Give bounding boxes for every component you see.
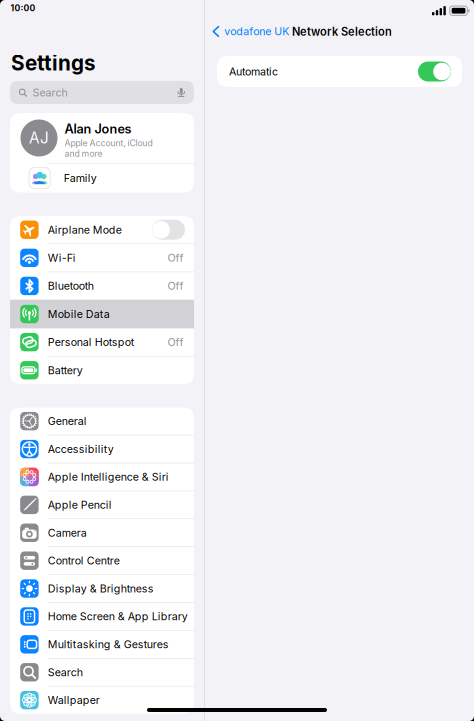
button[interactable]: Bluetooth — [10, 272, 194, 300]
button[interactable]: Display & Brightness — [10, 575, 194, 602]
staticText: AJ — [29, 129, 49, 147]
button[interactable]: Automatic — [418, 61, 451, 81]
button[interactable]: Family — [10, 164, 194, 193]
button[interactable]: Search — [10, 659, 194, 686]
button[interactable]: AJ — [10, 113, 194, 163]
button[interactable]: Personal Hotspot — [10, 328, 194, 356]
staticText: Control Centre — [48, 554, 120, 567]
button[interactable]: Wallpaper — [10, 686, 194, 714]
button[interactable]: Apple Intelligence & Siri — [10, 463, 194, 491]
staticText: Apple Intelligence & Siri — [48, 470, 169, 483]
staticText: Off — [167, 336, 183, 349]
staticText: Off — [167, 279, 183, 292]
staticText: Multitasking & Gestures — [48, 638, 169, 651]
staticText: Personal Hotspot — [48, 336, 134, 349]
staticText: Home Screen & App Library — [48, 610, 188, 623]
staticText: Wallpaper — [48, 694, 100, 707]
staticText: and more — [64, 148, 102, 159]
button[interactable]: vodafone UK — [212, 25, 289, 38]
staticText: Airplane Mode — [48, 223, 122, 236]
staticText: Family — [64, 172, 97, 184]
button[interactable]: Accessibility — [10, 435, 194, 463]
staticText: Network Selection — [292, 25, 392, 38]
button[interactable]: Control Centre — [10, 547, 194, 574]
staticText: Apple Account, iCloud — [64, 138, 152, 148]
staticText: Accessibility — [48, 443, 114, 455]
staticText: 10:00 — [10, 3, 35, 13]
button[interactable]: Wi-Fi — [10, 244, 194, 272]
button[interactable]: Mobile Data — [10, 300, 194, 328]
staticText: Off — [167, 251, 183, 264]
staticText: Mobile Data — [48, 308, 110, 320]
staticText: Settings — [11, 50, 96, 75]
staticText: General — [48, 415, 87, 428]
button[interactable]: Airplane Mode — [10, 216, 194, 243]
button[interactable]: General — [10, 407, 194, 435]
button[interactable]: Camera — [10, 519, 194, 546]
staticText: Search — [32, 86, 67, 99]
button[interactable]: Battery — [10, 356, 194, 384]
button[interactable]: Multitasking & Gestures — [10, 631, 194, 658]
staticText: Bluetooth — [48, 279, 94, 292]
staticText: Display & Brightness — [48, 582, 154, 595]
staticText: Alan Jones — [64, 121, 131, 137]
staticText: Automatic — [229, 65, 278, 78]
staticText: Battery — [48, 364, 83, 377]
staticText: Wi-Fi — [48, 251, 76, 264]
staticText: Apple Pencil — [48, 498, 112, 511]
button[interactable]: Apple Pencil — [10, 491, 194, 518]
button[interactable]: Home Screen & App Library — [10, 603, 194, 630]
staticText: Camera — [48, 526, 87, 539]
staticText: vodafone UK — [224, 25, 289, 38]
staticText: Search — [48, 666, 83, 679]
